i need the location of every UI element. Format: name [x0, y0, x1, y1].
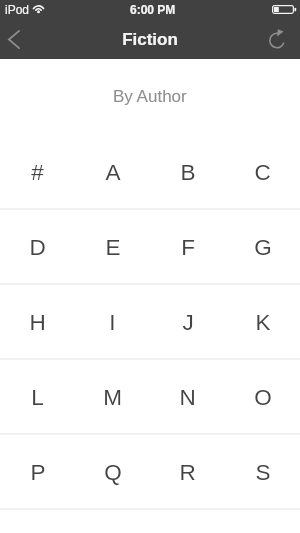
button[interactable]: Back [0, 20, 28, 59]
staticText: E [105, 235, 121, 260]
button[interactable]: I [75, 285, 150, 360]
button[interactable]: J [150, 285, 225, 360]
button[interactable]: L [0, 360, 75, 435]
staticText: Fiction [122, 30, 178, 49]
staticText: I [109, 310, 116, 335]
staticText: # [31, 160, 44, 185]
button[interactable]: B [150, 135, 225, 210]
button[interactable]: # [0, 135, 75, 210]
staticText: M [103, 385, 122, 410]
staticText: iPod [5, 3, 30, 16]
button[interactable]: S [225, 435, 300, 510]
button[interactable]: F [150, 210, 225, 285]
button[interactable]: K [225, 285, 300, 360]
button[interactable]: G [225, 210, 300, 285]
staticText: N [179, 385, 196, 410]
button[interactable]: A [75, 135, 150, 210]
button[interactable]: R [150, 435, 225, 510]
staticText: K [255, 310, 271, 335]
staticText: J [182, 310, 194, 335]
staticText: R [179, 460, 196, 485]
staticText: By Author [113, 87, 187, 106]
staticText: A [105, 160, 121, 185]
staticText: C [254, 160, 271, 185]
button[interactable]: E [75, 210, 150, 285]
button[interactable]: D [0, 210, 75, 285]
staticText: Q [104, 460, 122, 485]
button[interactable]: Refresh [260, 20, 300, 59]
button[interactable]: N [150, 360, 225, 435]
staticText: B [180, 160, 196, 185]
button[interactable]: M [75, 360, 150, 435]
staticText: P [30, 460, 46, 485]
button[interactable]: O [225, 360, 300, 435]
staticText: 6:00 PM [130, 3, 176, 16]
button[interactable]: C [225, 135, 300, 210]
staticText: G [254, 235, 272, 260]
staticText: F [181, 235, 195, 260]
staticText: H [29, 310, 46, 335]
button[interactable]: H [0, 285, 75, 360]
staticText: O [254, 385, 272, 410]
button[interactable]: P [0, 435, 75, 510]
button[interactable]: Q [75, 435, 150, 510]
staticText: D [29, 235, 46, 260]
staticText: L [31, 385, 44, 410]
staticText: S [255, 460, 271, 485]
